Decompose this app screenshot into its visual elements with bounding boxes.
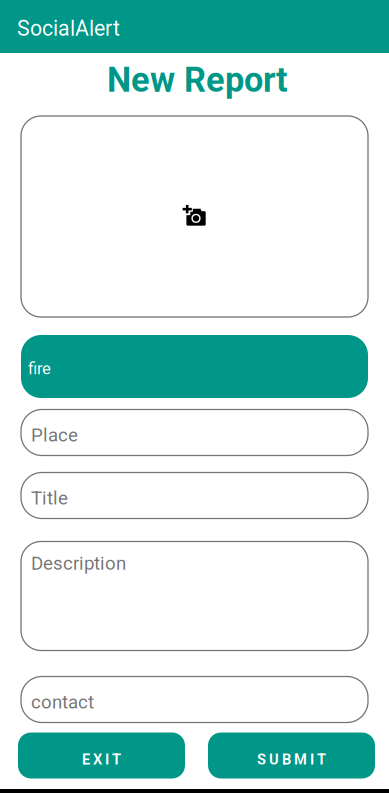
staticText: E X I T — [82, 751, 121, 768]
staticText: contact — [31, 691, 94, 713]
staticText: Place — [31, 424, 78, 446]
button[interactable]: Description — [21, 541, 368, 650]
staticText: Description — [31, 552, 126, 574]
button[interactable]: fire — [21, 335, 368, 398]
staticText: S U B M I T — [257, 751, 326, 768]
staticText: SocialAlert — [17, 16, 120, 41]
button[interactable]: Title — [21, 472, 368, 518]
button[interactable]: Place — [21, 409, 368, 455]
staticText: New Report — [107, 60, 288, 100]
staticText: fire — [28, 359, 51, 378]
button[interactable]: S U B M I T — [208, 732, 375, 778]
staticText: Title — [31, 487, 68, 509]
button[interactable]: contact — [21, 676, 368, 722]
button[interactable]: Add a photo — [21, 116, 368, 317]
button[interactable]: E X I T — [18, 732, 185, 778]
